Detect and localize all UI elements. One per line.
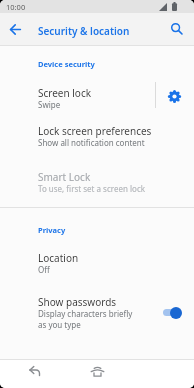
staticText: Show passwords bbox=[38, 295, 117, 309]
staticText: Off bbox=[38, 264, 50, 275]
staticText: Display characters briefly bbox=[38, 308, 133, 319]
staticText: Swipe bbox=[38, 99, 61, 110]
button[interactable]: Smart Lock bbox=[0, 163, 194, 199]
button[interactable]: Location bbox=[0, 244, 194, 278]
staticText: as you type bbox=[38, 319, 81, 330]
staticText: Lock screen preferences bbox=[38, 124, 152, 138]
staticText: To use, first set a screen lock bbox=[38, 183, 145, 194]
button[interactable] bbox=[24, 360, 46, 382]
staticText: Smart Lock bbox=[38, 170, 91, 184]
staticText: Location bbox=[38, 251, 79, 265]
staticText: Device security bbox=[38, 59, 95, 69]
staticText: Show all notification content bbox=[38, 137, 145, 148]
button[interactable]: Screen lock bbox=[0, 79, 194, 112]
button[interactable]: Show passwords bbox=[0, 289, 194, 334]
button[interactable] bbox=[164, 86, 185, 107]
staticText: Screen lock bbox=[38, 86, 92, 100]
staticText: Security & location bbox=[38, 24, 130, 38]
button[interactable]: Lock screen preferences bbox=[0, 117, 194, 153]
button[interactable] bbox=[167, 19, 187, 39]
button[interactable] bbox=[6, 20, 25, 39]
staticText: Privacy bbox=[38, 225, 66, 235]
staticText: 10:00 bbox=[6, 2, 26, 12]
button[interactable] bbox=[86, 360, 108, 382]
